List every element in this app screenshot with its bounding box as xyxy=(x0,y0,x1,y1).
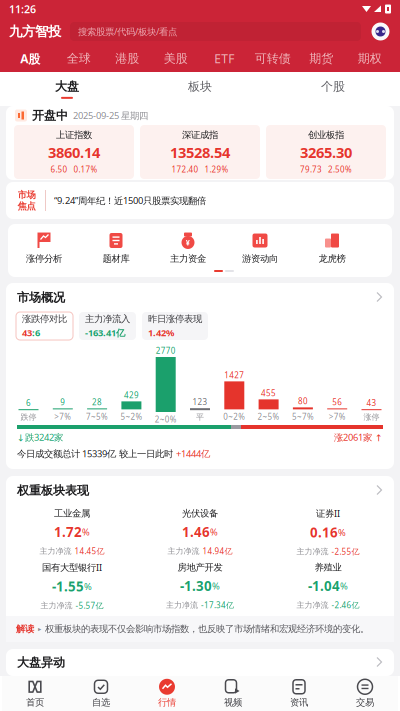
button[interactable]: 港股 xyxy=(103,45,151,72)
button[interactable]: 证券II xyxy=(264,505,392,559)
button[interactable]: 工业金属 xyxy=(8,505,136,559)
button[interactable]: 养殖业 xyxy=(264,559,392,613)
staticText: 期权 xyxy=(358,51,382,66)
button[interactable]: 资讯 xyxy=(266,676,332,711)
button[interactable]: 打板 xyxy=(368,232,400,264)
staticText: 题材库 xyxy=(102,253,129,264)
button[interactable]: 权重板块表现 xyxy=(6,476,394,505)
staticText: 2~5% xyxy=(258,411,280,422)
staticText: 市场 xyxy=(17,189,35,200)
staticText: -1.30 xyxy=(180,577,212,595)
button[interactable]: 板块 xyxy=(133,72,266,106)
button[interactable]: ¥ xyxy=(152,232,224,264)
button[interactable]: 交易 xyxy=(332,676,398,711)
staticText: 主力净流 xyxy=(296,547,328,556)
staticText: 3860.14 xyxy=(48,143,100,162)
button[interactable]: 个股 xyxy=(266,72,399,106)
button[interactable]: 全球 xyxy=(54,45,103,72)
staticText: 自选 xyxy=(92,697,110,708)
staticText: % xyxy=(338,526,346,539)
staticText: 全球 xyxy=(67,51,91,66)
staticText: ▸ xyxy=(38,625,41,633)
staticText: -17.34亿 xyxy=(201,600,234,610)
staticText: +1444亿 xyxy=(176,447,210,460)
staticText: -2.46亿 xyxy=(331,600,359,610)
staticText: 涨跌停对比 xyxy=(22,313,67,325)
staticText: 大盘 xyxy=(55,79,79,94)
staticText: 28 xyxy=(92,397,102,407)
staticText: A股 xyxy=(20,50,40,66)
button[interactable]: 房地产开发 xyxy=(136,559,264,613)
staticText: 创业板指 xyxy=(308,129,344,141)
button[interactable]: 自选 xyxy=(68,676,134,711)
button[interactable]: 主力净流入 xyxy=(79,312,136,340)
staticText: 2025-09-25 星期四 xyxy=(73,109,148,122)
staticText: 涨停 xyxy=(363,412,379,422)
button[interactable]: 国有大型银行II xyxy=(8,559,136,613)
staticText: 80 xyxy=(298,396,308,406)
button[interactable]: 题材库 xyxy=(80,232,152,264)
button[interactable]: A股 xyxy=(6,45,54,72)
staticText: 深证成指 xyxy=(182,129,218,141)
button[interactable]: 搜索股票/代码/板块/看点 xyxy=(70,22,361,41)
button[interactable]: 行情 xyxy=(134,676,200,711)
staticText: 6.50 xyxy=(50,164,67,175)
staticText: 首页 xyxy=(26,697,44,708)
staticText: 美股 xyxy=(164,51,188,66)
button[interactable]: 市场 xyxy=(0,182,400,219)
staticText: 11:26 xyxy=(9,2,36,16)
staticText: 1.42% xyxy=(148,326,174,339)
button[interactable]: 龙虎榜 xyxy=(296,232,368,264)
staticText: 455 xyxy=(261,388,276,398)
staticText: 1.72 xyxy=(54,523,82,541)
button[interactable]: 大盘 xyxy=(0,72,133,106)
staticText: 14.94亿 xyxy=(202,546,232,556)
staticText: 板块 xyxy=(188,79,212,94)
staticText: 九方智投 xyxy=(9,23,61,40)
staticText: ETF xyxy=(214,50,234,66)
staticText: 0.17% xyxy=(73,164,97,175)
button[interactable]: 上证指数 xyxy=(14,125,134,179)
button[interactable]: 视频 xyxy=(200,676,266,711)
button[interactable]: ETF xyxy=(200,45,248,72)
staticText: 主力净流 xyxy=(40,601,72,610)
staticText: >7% xyxy=(329,411,346,422)
staticText: 养殖业 xyxy=(314,562,341,573)
staticText: % xyxy=(212,580,220,592)
staticText: 7~5% xyxy=(86,411,108,422)
button[interactable]: 首页 xyxy=(2,676,68,711)
staticText: % xyxy=(340,580,348,592)
staticText: 涨停分析 xyxy=(26,253,62,264)
staticText: 行情 xyxy=(158,697,176,708)
staticText: 1.46 xyxy=(182,523,210,541)
staticText: 43 xyxy=(22,326,32,339)
button[interactable]: 个人中心 xyxy=(370,21,391,42)
button[interactable]: 涨跌停对比 xyxy=(16,312,73,340)
button[interactable]: 创业板指 xyxy=(266,125,386,179)
staticText: 资讯 xyxy=(290,697,308,708)
button[interactable]: 期权 xyxy=(345,45,394,72)
button[interactable]: 深证成指 xyxy=(140,125,260,179)
staticText: 视频 xyxy=(224,697,242,708)
staticText: % xyxy=(210,526,218,538)
button[interactable]: 美股 xyxy=(151,45,200,72)
button[interactable]: 市场概况 xyxy=(6,283,394,312)
staticText: 主力净流 xyxy=(167,546,199,556)
button[interactable]: 可转债 xyxy=(248,45,297,72)
button[interactable]: 涨停分析 xyxy=(8,232,80,264)
staticText: 2.50% xyxy=(328,164,352,175)
staticText: 79.73 xyxy=(300,164,322,175)
button[interactable]: 昨日涨停表现 xyxy=(142,312,208,340)
staticText: 1.29% xyxy=(204,164,228,175)
button[interactable]: 光伏设备 xyxy=(136,505,264,559)
staticText: 个股 xyxy=(321,79,345,94)
button[interactable]: 期货 xyxy=(297,45,345,72)
staticText: -1.04 xyxy=(308,577,340,595)
button[interactable]: 游资动向 xyxy=(224,232,296,264)
button[interactable]: 大盘异动 xyxy=(0,649,400,676)
staticText: 1427 xyxy=(224,370,244,380)
staticText: ¥ xyxy=(185,237,190,248)
staticText: 13528.54 xyxy=(170,143,230,162)
staticText: 172.40 xyxy=(171,164,198,175)
